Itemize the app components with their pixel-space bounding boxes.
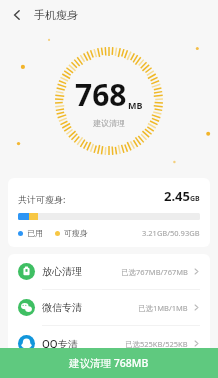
staticText: 建议清理 768MB xyxy=(69,356,149,370)
button[interactable]: 放心清理 xyxy=(8,254,210,289)
button[interactable]: QQ专清 xyxy=(8,326,210,361)
staticText: 已选525KB/525KB xyxy=(125,339,188,349)
button[interactable]: Back xyxy=(6,4,28,26)
button[interactable]: 微信专清 xyxy=(8,290,210,325)
staticText: 手机瘦身 xyxy=(34,8,78,22)
staticText: GB xyxy=(190,194,200,204)
staticText: QQ专清 xyxy=(42,337,78,351)
staticText: 已用 xyxy=(27,228,43,238)
staticText: MB xyxy=(128,99,143,111)
staticText: 已选1MB/1MB xyxy=(138,303,188,313)
button[interactable]: 建议清理 768MB xyxy=(0,348,218,378)
staticText: 已选767MB/767MB xyxy=(121,267,188,277)
staticText: 2.45 xyxy=(164,187,190,205)
staticText: 建议清理 xyxy=(93,118,125,128)
staticText: 共计可瘦身: xyxy=(18,193,66,205)
staticText: 放心清理 xyxy=(42,265,82,278)
staticText: 3.21GB/50.93GB xyxy=(142,228,200,238)
staticText: 微信专清 xyxy=(42,301,82,314)
staticText: 可瘦身 xyxy=(64,228,88,238)
staticText: 768 xyxy=(75,74,127,115)
